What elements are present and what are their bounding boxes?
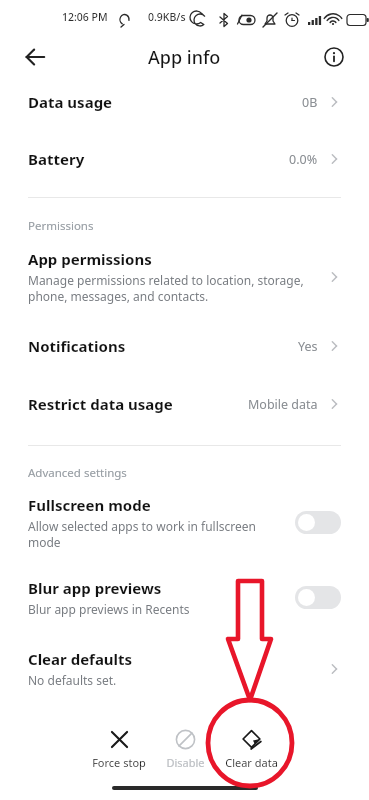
button[interactable]: Clear defaults	[0, 645, 369, 692]
button[interactable]: Force stop	[86, 729, 152, 770]
staticText: Advanced settings	[28, 465, 127, 481]
button[interactable]: Blur app previews	[295, 586, 341, 609]
staticText: Battery	[28, 149, 289, 169]
button[interactable]: Back	[14, 36, 56, 78]
staticText: App info	[148, 45, 221, 70]
staticText: No defaults set.	[28, 672, 117, 688]
staticText: Clear data	[225, 755, 278, 770]
staticText: App permissions	[28, 249, 152, 269]
button[interactable]: Restrict data usage	[0, 388, 369, 420]
button[interactable]: App details	[313, 36, 355, 78]
staticText: Clear defaults	[28, 649, 133, 669]
button[interactable]: Battery	[0, 143, 369, 175]
staticText: Allow selected apps to work in fullscree…	[28, 518, 256, 550]
button[interactable]: App permissions	[0, 245, 369, 308]
staticText: Fullscreen mode	[28, 495, 151, 515]
staticText: Disable	[166, 755, 205, 770]
staticText: Force stop	[92, 755, 146, 770]
staticText: Blur app previews	[28, 578, 162, 598]
staticText: Manage permissions related to location, …	[28, 272, 304, 304]
staticText: 0.0%	[289, 151, 318, 168]
button[interactable]: Blur app previews	[0, 574, 369, 621]
button[interactable]: Fullscreen mode	[295, 511, 341, 534]
staticText: Yes	[298, 338, 318, 355]
staticText: 0.9KB/s	[148, 10, 186, 24]
button[interactable]: Data usage	[0, 86, 369, 118]
button[interactable]: Clear data	[218, 729, 284, 770]
staticText: Blur app previews in Recents	[28, 601, 190, 617]
staticText: Data usage	[28, 92, 302, 112]
staticText: 0B	[302, 94, 318, 111]
staticText: 12:06 PM	[62, 10, 108, 24]
button[interactable]: Notifications	[0, 330, 369, 362]
button[interactable]: Fullscreen mode	[0, 491, 369, 554]
staticText: Mobile data	[248, 396, 318, 413]
staticText: Notifications	[28, 336, 298, 356]
staticText: Restrict data usage	[28, 394, 248, 414]
button[interactable]: Disable	[152, 729, 218, 770]
staticText: Permissions	[28, 218, 94, 234]
